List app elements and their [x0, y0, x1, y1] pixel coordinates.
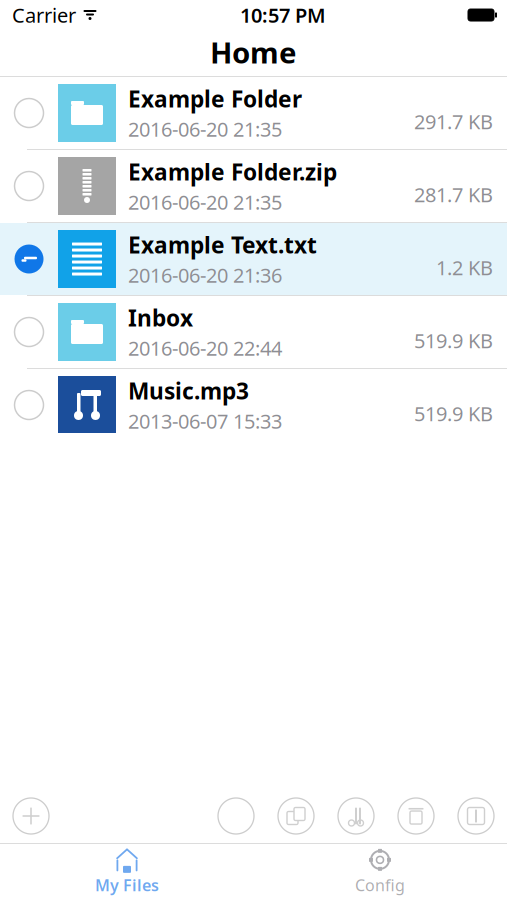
button[interactable]: Cut [334, 794, 378, 838]
button[interactable]: Example Text.txt [0, 223, 507, 296]
staticText: My Files [95, 874, 159, 896]
staticText: Music.mp3 [128, 376, 249, 406]
button[interactable]: Inbox [0, 296, 507, 369]
staticText: 2013-06-07 15:33 [128, 408, 282, 434]
staticText: 519.9 KB [414, 400, 493, 427]
staticText: Carrier [12, 2, 76, 28]
button[interactable]: Delete [394, 794, 438, 838]
staticText: 2016-06-20 21:36 [128, 262, 282, 288]
staticText: Example Folder [128, 84, 302, 114]
staticText: Example Folder.zip [128, 157, 337, 187]
staticText: Home [210, 32, 297, 71]
staticText: 1.2 KB [436, 254, 493, 281]
staticText: 10:57 PM [240, 2, 326, 28]
button[interactable]: Config [253, 844, 506, 900]
staticText: Inbox [128, 303, 193, 333]
button[interactable]: Example Folder.zip [0, 150, 507, 223]
staticText: Config [355, 874, 405, 896]
button[interactable]: Select All [214, 794, 258, 838]
button[interactable]: Copy [274, 794, 318, 838]
staticText: 281.7 KB [414, 181, 493, 208]
button[interactable]: My Files [0, 844, 253, 900]
staticText: 2016-06-20 22:44 [128, 335, 282, 361]
staticText: 2016-06-20 21:35 [128, 116, 282, 142]
button[interactable]: Edit [454, 794, 498, 838]
button[interactable]: Music.mp3 [0, 369, 507, 442]
staticText: 519.9 KB [414, 327, 493, 354]
staticText: 2016-06-20 21:35 [128, 189, 282, 215]
button[interactable]: Example Folder [0, 77, 507, 150]
staticText: 291.7 KB [414, 108, 493, 135]
button[interactable]: Add [9, 794, 53, 838]
staticText: Example Text.txt [128, 230, 317, 260]
